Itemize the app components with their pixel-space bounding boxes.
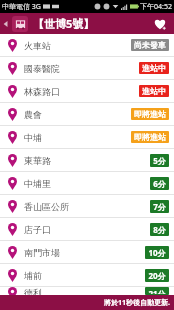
staticText: 德利 — [24, 287, 42, 295]
staticText: 南門市場 — [24, 247, 60, 258]
button[interactable]: 香山區公所 — [0, 195, 174, 217]
button[interactable]: 國泰醫院 — [0, 57, 174, 79]
staticText: 進站中 — [142, 63, 166, 73]
button[interactable]: 埔前 — [0, 264, 174, 286]
staticText: 中埔里 — [24, 178, 51, 189]
staticText: 中華電信 3G — [2, 2, 41, 12]
button[interactable]: Bus route — [12, 16, 28, 32]
staticText: 火車站 — [24, 40, 51, 51]
staticText: 8分 — [153, 224, 166, 235]
staticText: 香山區公所 — [24, 201, 69, 212]
button[interactable]: 林森路口 — [0, 80, 174, 102]
staticText: 20分 — [148, 270, 166, 281]
staticText: 5分 — [153, 155, 166, 166]
staticText: 21分 — [148, 288, 166, 294]
button[interactable]: 中埔里 — [0, 172, 174, 194]
staticText: 中埔 — [24, 132, 42, 143]
staticText: 國泰醫院 — [24, 63, 60, 74]
button[interactable]: 德利 — [0, 287, 174, 295]
staticText: 將於11秒後自動更新. — [104, 298, 170, 308]
button[interactable]: Add to favourites — [146, 13, 174, 34]
staticText: 埔前 — [24, 270, 42, 281]
staticText: 店子口 — [24, 224, 51, 235]
button[interactable]: 南門市場 — [0, 241, 174, 263]
staticText: 尚未發車 — [134, 40, 166, 50]
staticText: 【世博5號】 — [33, 16, 95, 31]
staticText: 即將進站 — [134, 109, 166, 119]
staticText: 下午04:52 — [140, 2, 172, 12]
staticText: 進站中 — [142, 86, 166, 96]
staticText: 10分 — [148, 247, 166, 258]
button[interactable]: 中埔 — [0, 126, 174, 148]
button[interactable]: Back — [0, 13, 12, 34]
staticText: 東華路 — [24, 155, 51, 166]
staticText: 7分 — [153, 201, 166, 212]
button[interactable]: 火車站 — [0, 34, 174, 56]
staticText: 6分 — [153, 178, 166, 189]
staticText: 林森路口 — [24, 86, 60, 97]
button[interactable]: 農會 — [0, 103, 174, 125]
staticText: 農會 — [24, 109, 42, 120]
button[interactable]: 店子口 — [0, 218, 174, 240]
staticText: 即將進站 — [134, 132, 166, 142]
button[interactable]: 東華路 — [0, 149, 174, 171]
